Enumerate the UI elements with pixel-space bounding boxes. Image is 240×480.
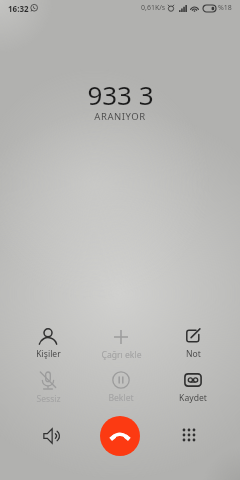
staticText: Kişiler — [36, 348, 61, 360]
button[interactable]: Sessiz — [15, 369, 81, 405]
staticText: Beklet — [108, 392, 134, 404]
button[interactable]: Çağrı ekle — [88, 325, 154, 361]
staticText: 933 3 — [87, 77, 154, 112]
button[interactable]: Not — [160, 324, 226, 360]
staticText: %18 — [218, 3, 232, 13]
staticText: 16:32 — [8, 3, 29, 14]
button[interactable]: Kişiler — [15, 324, 81, 360]
button[interactable]: Tuş takımı — [169, 415, 209, 455]
button[interactable]: Çağrıyı sonlandır — [100, 416, 140, 456]
button[interactable]: Hoparlör — [32, 416, 72, 456]
staticText: ARANIYOR — [94, 110, 146, 123]
staticText: Çağrı ekle — [101, 349, 142, 361]
staticText: Not — [186, 348, 201, 360]
staticText: 0,61K/s — [141, 3, 166, 13]
button[interactable]: Kaydet — [160, 368, 226, 404]
staticText: Sessiz — [36, 393, 61, 405]
button[interactable]: Beklet — [88, 368, 154, 404]
staticText: Kaydet — [179, 392, 207, 404]
